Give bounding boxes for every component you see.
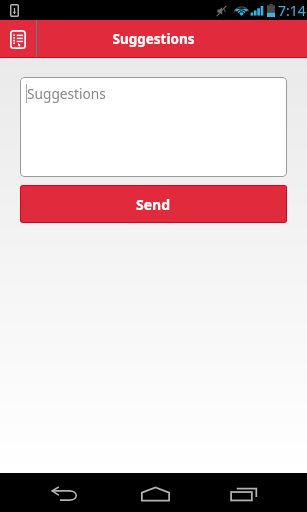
staticText: 7:14 [278,1,306,20]
other: Download [10,4,19,17]
button[interactable]: Open navigation [0,20,36,58]
staticText: Send [136,195,171,214]
button[interactable]: Home [115,473,195,512]
button[interactable]: Back [25,473,105,512]
staticText: Suggestions [27,84,106,103]
button[interactable]: Recent apps [204,473,284,512]
button[interactable]: Suggestions [20,77,287,177]
button[interactable]: Send [20,185,287,223]
staticText: Suggestions [37,30,270,48]
